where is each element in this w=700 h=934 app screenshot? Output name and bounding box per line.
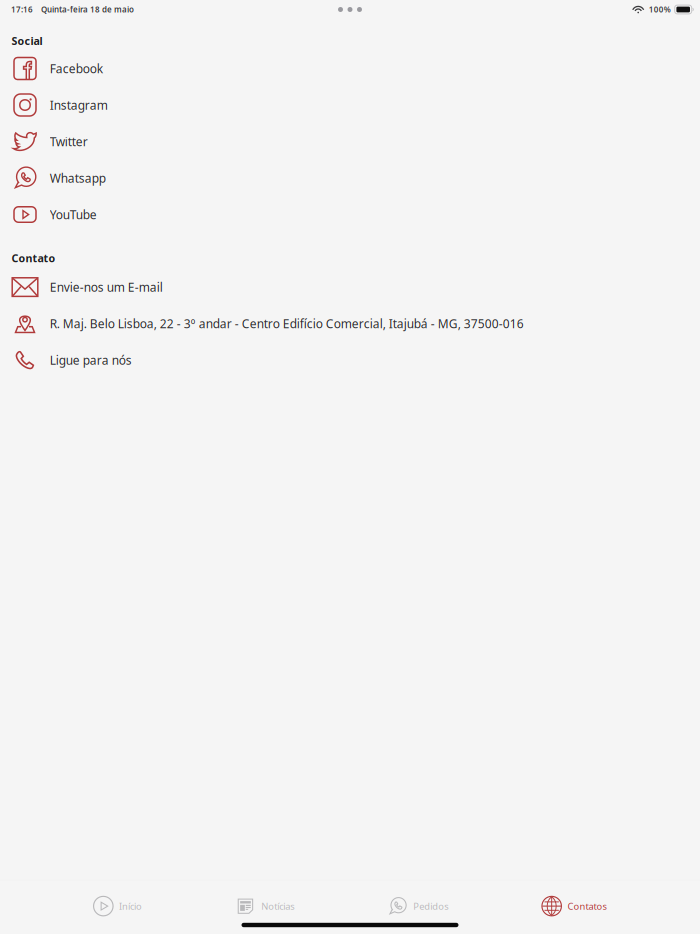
staticText: Notícias [261, 900, 294, 912]
staticText: Contatos [567, 900, 606, 912]
button[interactable]: Envie-nos um E-mail [0, 269, 700, 305]
button[interactable]: Notícias [236, 880, 294, 916]
staticText: Contato [11, 251, 55, 265]
button[interactable]: Twitter [0, 123, 700, 160]
staticText: Instagram [50, 97, 108, 113]
button[interactable]: Ligue para nós [0, 342, 700, 378]
button[interactable]: Início [93, 880, 142, 916]
staticText: Twitter [50, 133, 88, 149]
staticText: YouTube [50, 206, 97, 222]
staticText: Início [119, 900, 142, 912]
staticText: Envie-nos um E-mail [50, 279, 163, 295]
button[interactable]: Instagram [0, 87, 700, 123]
staticText: Ligue para nós [50, 352, 132, 368]
staticText: Whatsapp [50, 170, 106, 186]
staticText: Quinta-feira 18 de maio [41, 4, 134, 15]
button[interactable]: R. Maj. Belo Lisboa, 22 - 3º andar - Cen… [0, 305, 700, 342]
button[interactable]: Pedidos [388, 880, 448, 916]
button[interactable]: Facebook [0, 50, 700, 87]
button[interactable]: Contatos [542, 880, 606, 916]
staticText: 100% [649, 4, 671, 15]
staticText: R. Maj. Belo Lisboa, 22 - 3º andar - Cen… [50, 316, 524, 331]
staticText: Social [11, 34, 42, 48]
button[interactable]: YouTube [0, 196, 700, 233]
staticText: 17:16 [11, 4, 33, 15]
staticText: Facebook [50, 60, 103, 76]
button[interactable]: Whatsapp [0, 160, 700, 196]
staticText: Pedidos [413, 900, 448, 912]
